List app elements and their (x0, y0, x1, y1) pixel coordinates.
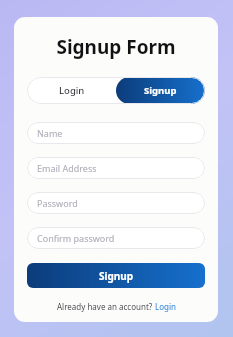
staticText: Login (59, 84, 85, 97)
staticText: Already have an account? (57, 301, 155, 312)
button[interactable]: Signup (116, 77, 205, 104)
staticText: Name (37, 127, 63, 139)
staticText: Signup (99, 269, 134, 283)
staticText: Signup Form (27, 34, 205, 60)
staticText: Confirm password (37, 232, 115, 244)
button[interactable]: Name (27, 122, 205, 144)
staticText: Signup (144, 84, 177, 97)
staticText: Login (155, 301, 176, 312)
button[interactable]: Login (155, 301, 176, 312)
button[interactable]: Password (27, 192, 205, 214)
staticText: Email Address (37, 162, 97, 174)
button[interactable]: Login (27, 77, 116, 104)
button[interactable]: Confirm password (27, 227, 205, 249)
button[interactable]: Email Address (27, 157, 205, 179)
button[interactable]: Signup (27, 263, 205, 288)
staticText: Password (37, 197, 78, 209)
